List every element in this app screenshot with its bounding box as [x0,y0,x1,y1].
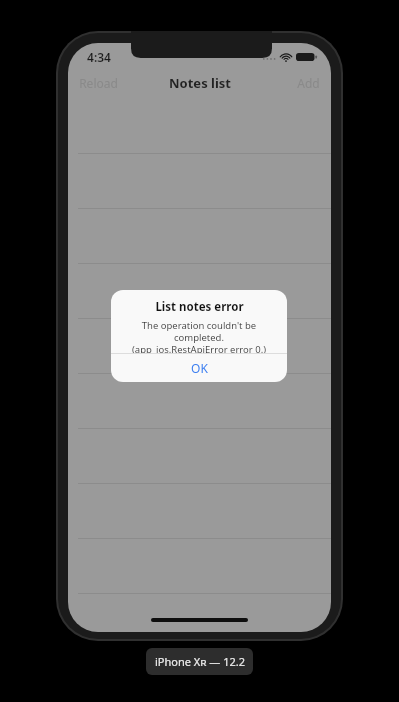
staticText: OK [191,360,208,376]
button[interactable]: Reload [68,68,129,98]
button[interactable] [68,594,331,632]
other: Battery [296,52,317,62]
button[interactable] [68,264,331,319]
staticText: 4:34 [87,49,111,65]
button[interactable] [68,374,331,429]
staticText: List notes error [155,299,244,315]
button[interactable]: Add [286,68,331,98]
other: Wi-Fi [280,53,292,62]
other: Cellular [262,53,277,62]
button[interactable] [68,319,331,374]
staticText: Add [297,75,320,91]
button[interactable]: OK [111,354,287,382]
staticText: Reload [79,75,118,91]
staticText: The operation couldn't be completed. (ap… [119,319,279,353]
staticText: iPhone Xʀ — 12.2 [155,654,245,669]
staticText: Notes list [169,74,231,92]
button[interactable]: iPhone Xʀ — 12.2 [146,648,253,675]
